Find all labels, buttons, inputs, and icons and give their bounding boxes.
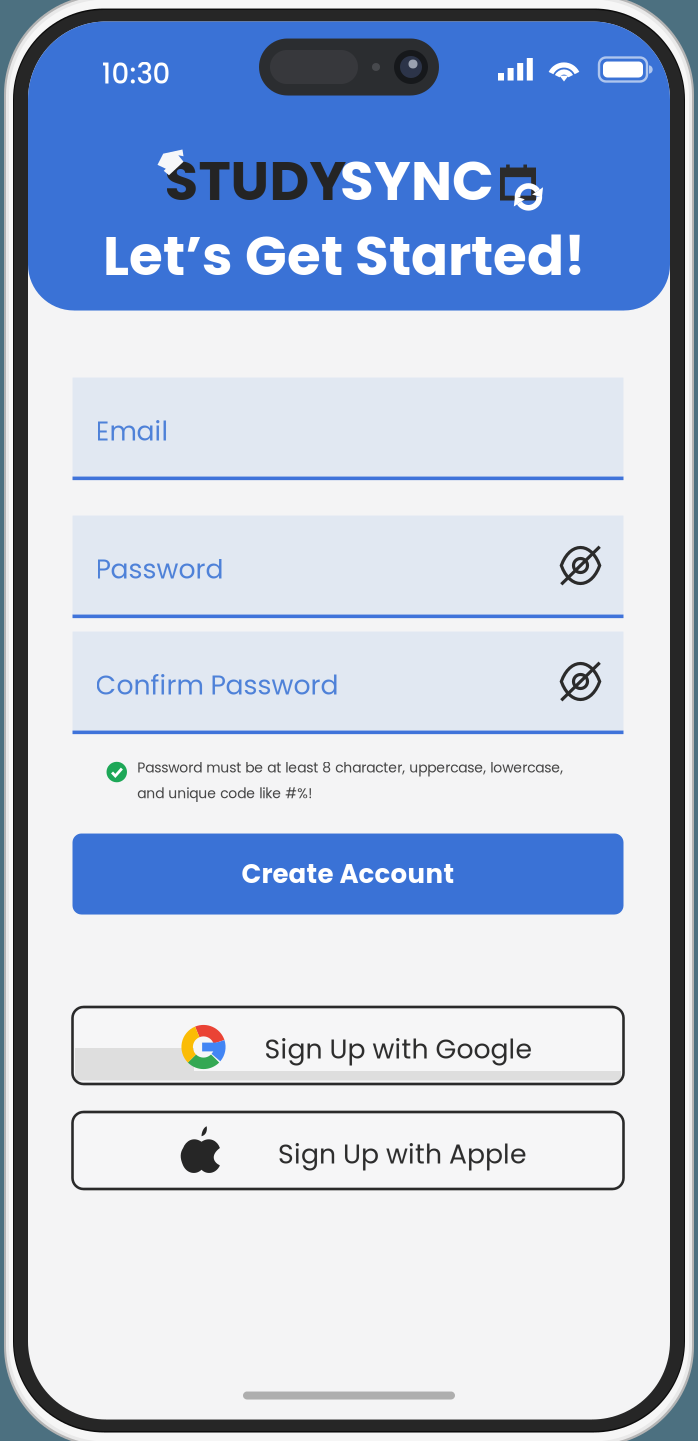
staticText: STUDY (164, 142, 346, 219)
staticText: Email (95, 412, 168, 450)
staticText: SYNC (340, 142, 494, 219)
staticText: Sign Up with Google (264, 1030, 532, 1068)
button[interactable]: Show Password (549, 534, 611, 596)
staticText: 10:30 (101, 54, 170, 93)
button[interactable]: Create Account (72, 833, 623, 914)
staticText: and unique code like #%! (137, 784, 312, 803)
staticText: Create Account (241, 856, 454, 892)
staticText: Password (95, 550, 223, 588)
staticText: Sign Up with Apple (278, 1135, 527, 1173)
button[interactable]: Sign Up with Google (72, 1007, 623, 1084)
staticText: Password must be at least 8 character, u… (137, 758, 563, 777)
staticText: Let’s Get Started! (103, 217, 585, 294)
button[interactable]: Show Confirm Password (549, 650, 611, 712)
button[interactable]: Sign Up with Apple (72, 1112, 623, 1189)
staticText: Confirm Password (95, 666, 338, 704)
